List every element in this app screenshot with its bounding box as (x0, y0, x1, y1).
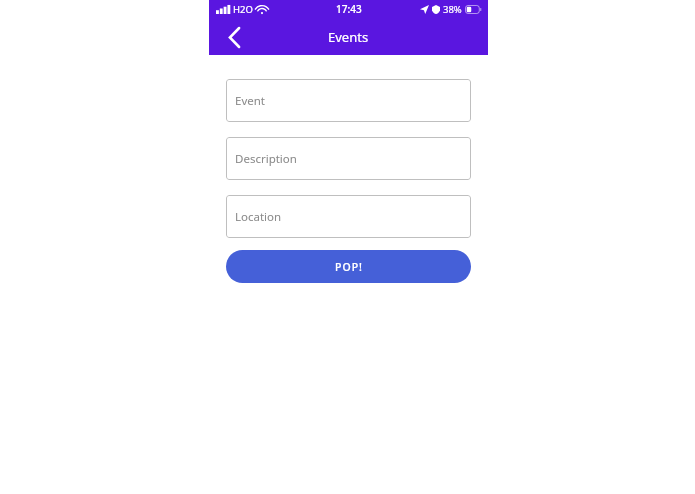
button[interactable]: Event (226, 79, 471, 122)
staticText: Location (235, 209, 282, 225)
staticText: Events (328, 28, 369, 46)
button[interactable]: Description (226, 137, 471, 180)
staticText: H2O (233, 3, 253, 16)
staticText: Description (235, 151, 297, 167)
staticText: POP! (335, 260, 363, 274)
button[interactable]: Back (221, 24, 247, 50)
staticText: 17:43 (336, 2, 362, 16)
staticText: 38% (443, 3, 462, 16)
button[interactable]: POP! (226, 250, 471, 283)
staticText: Event (235, 93, 265, 109)
button[interactable]: Location (226, 195, 471, 238)
